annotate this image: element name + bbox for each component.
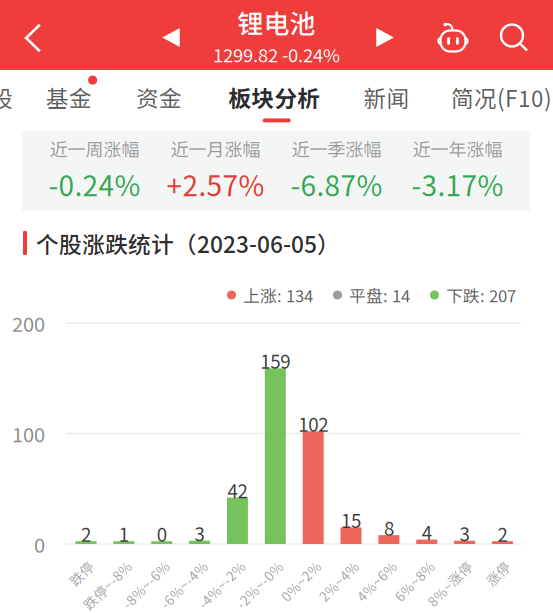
staticText: 200 (12, 308, 45, 337)
staticText: +2.57% (166, 164, 264, 204)
staticText: 简况(F10) (451, 81, 552, 113)
staticText: 资金 (136, 81, 182, 113)
staticText: 新闻 (363, 81, 409, 113)
staticText: -0.24% (48, 164, 140, 204)
button[interactable]: 资金 (130, 74, 193, 124)
staticText: 下跌: 207 (446, 283, 516, 307)
staticText: -2%~-0% (231, 579, 291, 599)
button[interactable]: 新闻 (357, 74, 420, 124)
staticText: 0 (157, 520, 167, 547)
staticText: 基金 (46, 81, 92, 113)
button[interactable]: Next sector (365, 19, 405, 56)
button[interactable]: AI assistant (432, 16, 474, 58)
staticText: -6%~-4% (155, 579, 215, 599)
button[interactable]: 基金 (40, 74, 103, 124)
staticText: 0 (34, 529, 45, 558)
staticText: 4%~6% (355, 579, 405, 599)
staticText: 上涨: 134 (243, 283, 313, 307)
staticText: 8 (384, 514, 394, 541)
staticText: 15 (341, 506, 361, 533)
staticText: 4 (422, 518, 432, 545)
staticText: 1 (119, 520, 129, 547)
staticText: 近一季涨幅 (291, 135, 381, 161)
button[interactable]: Search (494, 18, 534, 58)
staticText: 6%~8% (393, 579, 443, 599)
staticText: -6.87% (290, 164, 382, 204)
staticText: 2%~4% (317, 579, 367, 599)
staticText: 近一月涨幅 (170, 135, 260, 161)
staticText: 股 (0, 81, 13, 113)
staticText: 近一周涨幅 (49, 135, 139, 161)
staticText: 个股涨跌统计（2023-06-05） (36, 227, 340, 259)
staticText: 跌停 (74, 579, 102, 599)
staticText: 板块分析 (228, 81, 320, 113)
staticText: 2 (497, 520, 507, 547)
staticText: 102 (298, 410, 328, 437)
staticText: 42 (227, 476, 247, 503)
staticText: 8%~涨停 (423, 579, 480, 599)
staticText: 2 (81, 520, 91, 547)
staticText: 3 (195, 520, 205, 547)
staticText: 159 (260, 347, 290, 374)
staticText: 3 (460, 520, 470, 547)
staticText: 跌停~-8% (78, 579, 140, 599)
staticText: -4%~-2% (193, 579, 253, 599)
button[interactable]: Previous sector (151, 19, 191, 56)
staticText: 涨停 (490, 579, 518, 599)
staticText: 100 (12, 419, 45, 448)
staticText: -8%~-6% (118, 579, 178, 599)
staticText: -3.17% (411, 164, 503, 204)
button[interactable]: 股 (0, 74, 24, 124)
button[interactable]: 简况(F10) (445, 74, 553, 124)
button[interactable]: Back (14, 13, 51, 62)
staticText: 0%~2% (279, 579, 329, 599)
staticText: 锂电池 (237, 3, 315, 41)
staticText: 近一年涨幅 (412, 135, 502, 161)
button[interactable]: 板块分析 (222, 74, 331, 124)
staticText: 平盘: 14 (349, 283, 410, 307)
staticText: 1299.82 -0.24% (213, 41, 340, 68)
